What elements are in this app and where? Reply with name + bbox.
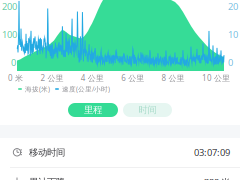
staticText: 4 公里: [81, 73, 104, 83]
staticText: 0: [11, 56, 16, 69]
staticText: 8 公里: [162, 73, 185, 83]
staticText: 10 公里: [202, 73, 230, 83]
staticText: 20: [228, 0, 238, 13]
staticText: 2 公里: [40, 73, 63, 83]
staticText: 03:07:09: [194, 146, 230, 159]
staticText: 0 米: [8, 73, 23, 83]
button[interactable]: 累计下降: [0, 168, 240, 180]
button[interactable]: 时间: [123, 103, 172, 117]
staticText: 6 公里: [121, 73, 144, 83]
button[interactable]: 里程: [68, 103, 118, 117]
staticText: 100: [2, 28, 17, 41]
staticText: 里程: [84, 104, 102, 116]
staticText: 累计下降: [29, 176, 65, 180]
staticText: 390 米: [204, 176, 230, 180]
staticText: 海拔(米): [25, 85, 50, 93]
staticText: 10: [228, 28, 238, 41]
staticText: 移动时间: [29, 147, 65, 158]
staticText: 速度(公里/小时): [62, 85, 110, 93]
staticText: 0: [228, 56, 233, 69]
button[interactable]: 移动时间: [0, 138, 240, 167]
staticText: 时间: [138, 104, 156, 116]
staticText: 200: [2, 0, 17, 13]
